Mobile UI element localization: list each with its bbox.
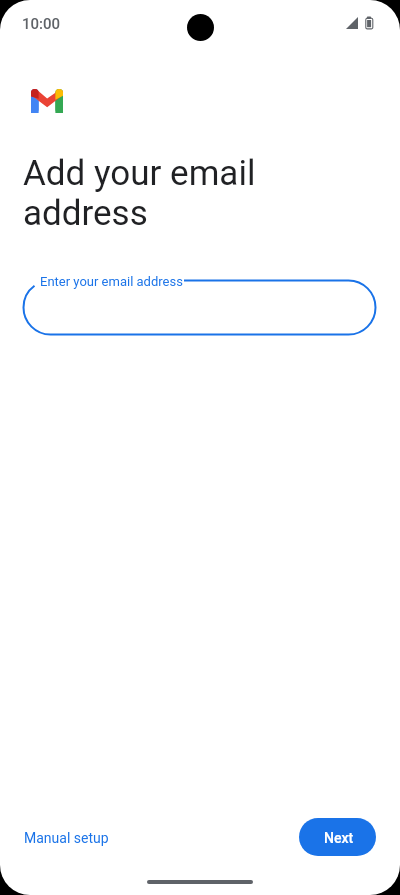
staticText: Enter your email address: [40, 274, 183, 289]
staticText: 10:00: [22, 15, 61, 33]
staticText: Next: [324, 830, 354, 846]
button[interactable]: Enter your email address: [23, 272, 376, 335]
button[interactable]: Manual setup: [16, 823, 117, 853]
staticText: Add your email address: [23, 153, 256, 233]
staticText: Manual setup: [24, 830, 109, 846]
button[interactable]: Next: [299, 818, 376, 856]
